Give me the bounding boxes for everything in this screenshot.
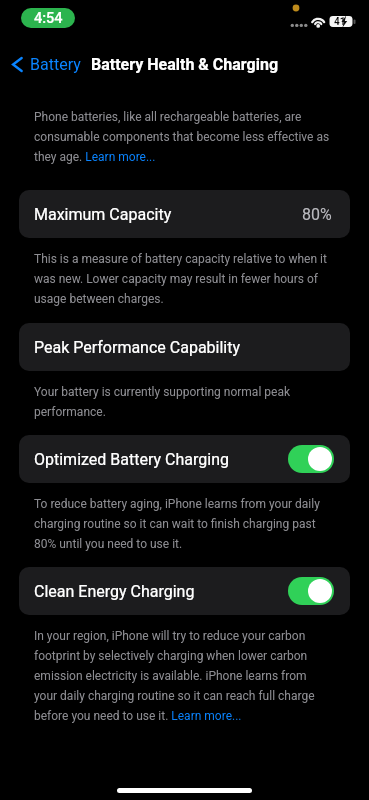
- staticText: 80%: [302, 205, 332, 224]
- staticText: Battery: [30, 55, 81, 74]
- staticText: Maximum Capacity: [34, 205, 172, 224]
- staticText: Peak Performance Capability: [34, 338, 241, 357]
- staticText: 4:54: [34, 10, 63, 27]
- staticText: Clean Energy Charging: [34, 582, 195, 601]
- staticText: To reduce battery aging, iPhone learns f…: [34, 492, 331, 552]
- button[interactable]: Maximum Capacity: [19, 190, 350, 238]
- button[interactable]: Recording in progress 4:54: [21, 8, 75, 28]
- button[interactable]: Battery: [0, 51, 87, 78]
- staticText: Battery Health & Charging: [91, 55, 279, 74]
- staticText: 41: [334, 16, 346, 28]
- button[interactable]: Peak Performance Capability: [19, 323, 350, 371]
- staticText: In your region, iPhone will try to reduc…: [34, 624, 331, 724]
- staticText: Your battery is currently supporting nor…: [34, 380, 331, 420]
- staticText: Phone batteries, like all rechargeable b…: [34, 105, 331, 165]
- button[interactable]: Clean Energy Charging: [19, 567, 350, 615]
- button[interactable]: Optimized Battery Charging: [288, 445, 334, 473]
- button[interactable]: Clean Energy Charging: [288, 577, 334, 605]
- staticText: Optimized Battery Charging: [34, 450, 229, 469]
- button[interactable]: Optimized Battery Charging: [19, 435, 350, 483]
- staticText: This is a measure of battery capacity re…: [34, 247, 331, 307]
